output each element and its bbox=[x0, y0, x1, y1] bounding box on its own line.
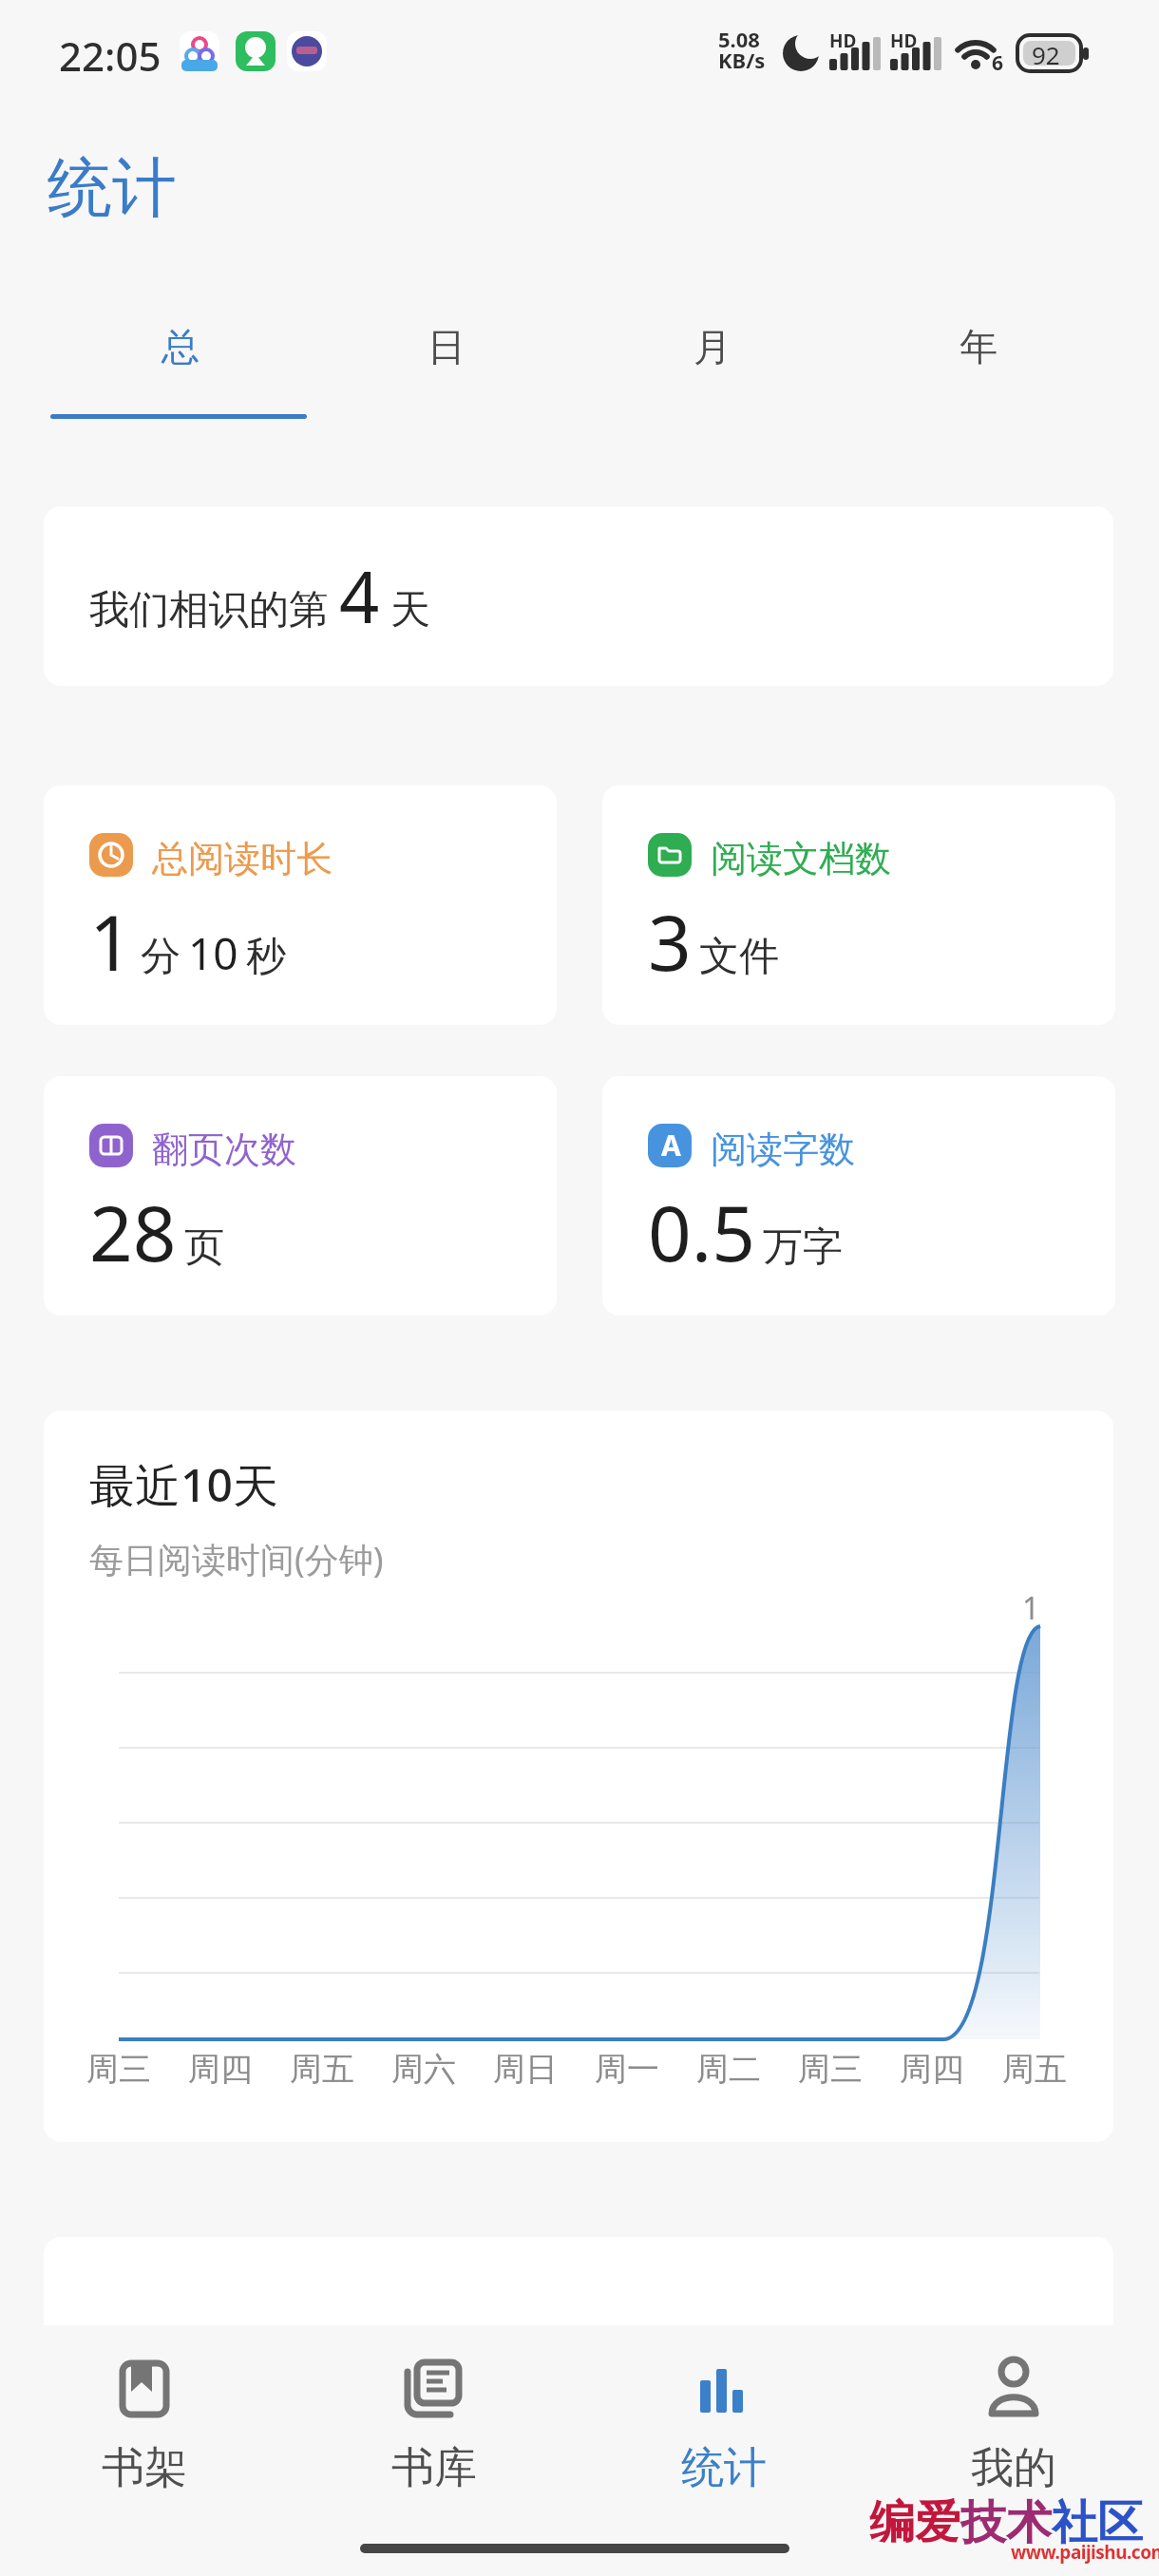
button[interactable]: 年 bbox=[912, 309, 1045, 394]
staticText: 周五 bbox=[290, 2049, 354, 2090]
staticText: 28 bbox=[89, 1180, 177, 1283]
staticText: 92 bbox=[1032, 38, 1060, 71]
staticText: 秒 bbox=[246, 932, 286, 982]
staticText: 周五 bbox=[1002, 2049, 1067, 2090]
button[interactable]: 总阅读时长 bbox=[44, 786, 557, 1025]
button[interactable]: 我们相识的第 bbox=[44, 506, 1113, 686]
staticText: 我的 bbox=[971, 2441, 1056, 2495]
staticText: 周三 bbox=[798, 2049, 863, 2090]
staticText: 最近10天 bbox=[89, 1453, 278, 1516]
staticText: HD bbox=[890, 28, 918, 53]
staticText: 阅读文档数 bbox=[711, 836, 891, 881]
staticText: 文件 bbox=[699, 932, 779, 982]
staticText: 统计 bbox=[47, 148, 177, 230]
staticText: 1 bbox=[1022, 1587, 1040, 1629]
staticText: 年 bbox=[959, 323, 997, 370]
staticText: 社区 bbox=[1052, 2494, 1143, 2551]
staticText: 周六 bbox=[391, 2049, 456, 2090]
button[interactable]: 月 bbox=[646, 309, 779, 394]
staticText: 月 bbox=[693, 323, 731, 370]
staticText: 10 bbox=[188, 923, 238, 983]
button[interactable]: 日 bbox=[380, 309, 513, 394]
staticText: KB/s bbox=[718, 46, 766, 74]
staticText: 周三 bbox=[86, 2049, 151, 2090]
staticText: 3 bbox=[648, 889, 692, 993]
staticText: 周四 bbox=[188, 2049, 253, 2090]
button[interactable]: 最近10天 bbox=[44, 1411, 1113, 2142]
staticText: 翻页次数 bbox=[152, 1127, 296, 1172]
button[interactable]: 统计 bbox=[652, 2346, 796, 2508]
staticText: 技术 bbox=[960, 2494, 1052, 2551]
button[interactable]: 我的 bbox=[941, 2346, 1086, 2508]
staticText: 万字 bbox=[763, 1222, 843, 1273]
button[interactable]: A bbox=[602, 1076, 1115, 1316]
button[interactable]: 翻页次数 bbox=[44, 1076, 557, 1316]
button[interactable]: 总 bbox=[114, 309, 247, 394]
staticText: 阅读字数 bbox=[711, 1127, 855, 1172]
staticText: 天 bbox=[380, 580, 430, 635]
staticText: HD bbox=[829, 28, 857, 53]
staticText: 周日 bbox=[493, 2049, 558, 2090]
staticText: 0.5 bbox=[648, 1180, 755, 1283]
staticText: 分 bbox=[141, 932, 180, 982]
staticText: 日 bbox=[427, 323, 465, 370]
staticText: 周二 bbox=[696, 2049, 761, 2090]
staticText: 1 bbox=[89, 889, 133, 993]
button[interactable]: 书架 bbox=[72, 2346, 217, 2508]
staticText: 4 bbox=[339, 548, 380, 644]
staticText: 周一 bbox=[595, 2049, 659, 2090]
staticText: 书库 bbox=[391, 2441, 477, 2495]
staticText: 22:05 bbox=[59, 28, 161, 83]
staticText: 总 bbox=[161, 323, 199, 370]
staticText: 6 bbox=[992, 49, 1004, 77]
button[interactable]: 阅读文档数 bbox=[602, 786, 1115, 1025]
staticText: 统计 bbox=[681, 2441, 767, 2495]
staticText: 周四 bbox=[900, 2049, 964, 2090]
staticText: 每日阅读时间(分钟) bbox=[89, 1536, 384, 1582]
staticText: A bbox=[661, 1126, 681, 1165]
staticText: 5.08 bbox=[718, 25, 760, 53]
staticText: 书架 bbox=[102, 2441, 187, 2495]
staticText: www.paijishu.com bbox=[1011, 2540, 1159, 2565]
staticText: 编爱 bbox=[869, 2494, 960, 2551]
button[interactable]: 书库 bbox=[362, 2346, 506, 2508]
staticText: 我们相识的第 bbox=[89, 580, 339, 635]
staticText: 页 bbox=[184, 1222, 224, 1273]
staticText: 总阅读时长 bbox=[152, 836, 332, 881]
